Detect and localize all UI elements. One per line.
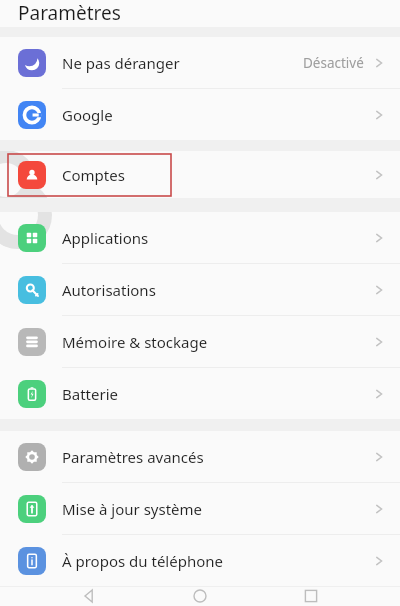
staticText: Google bbox=[62, 105, 372, 125]
staticText: À propos du téléphone bbox=[62, 551, 372, 571]
button[interactable]: Back bbox=[67, 586, 111, 606]
button[interactable]: Paramètres avancés bbox=[0, 431, 400, 482]
staticText: Applications bbox=[62, 228, 372, 248]
button[interactable]: Mémoire & stockage bbox=[0, 316, 400, 367]
staticText: Mémoire & stockage bbox=[62, 332, 372, 352]
button[interactable]: Batterie bbox=[0, 368, 400, 419]
button[interactable]: Applications bbox=[0, 212, 400, 263]
staticText: Comptes bbox=[62, 165, 372, 185]
button[interactable]: À propos du téléphone bbox=[0, 535, 400, 586]
button[interactable]: Recent apps bbox=[289, 586, 333, 606]
staticText: Paramètres bbox=[18, 0, 121, 24]
staticText: Mise à jour système bbox=[62, 499, 372, 519]
button[interactable]: Mise à jour système bbox=[0, 483, 400, 534]
button[interactable]: Comptes bbox=[0, 151, 400, 198]
staticText: Désactivé bbox=[303, 54, 364, 72]
button[interactable]: Autorisations bbox=[0, 264, 400, 315]
button[interactable]: Home bbox=[178, 586, 222, 606]
staticText: Paramètres avancés bbox=[62, 447, 372, 467]
staticText: Ne pas déranger bbox=[62, 53, 303, 73]
button[interactable]: Ne pas déranger bbox=[0, 37, 400, 88]
button[interactable]: Google bbox=[0, 89, 400, 140]
staticText: Autorisations bbox=[62, 280, 372, 300]
staticText: Batterie bbox=[62, 384, 372, 404]
